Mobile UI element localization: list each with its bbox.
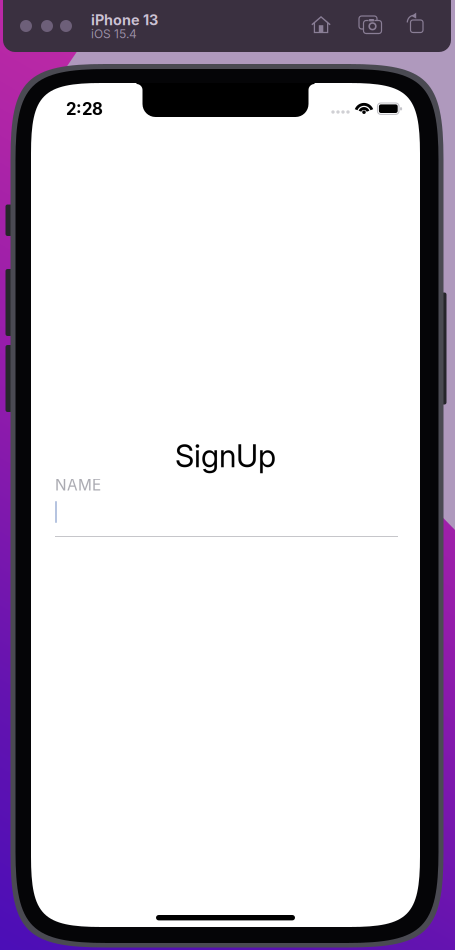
button[interactable]: Screenshot — [359, 16, 382, 34]
staticText: 2:28 — [66, 99, 103, 119]
staticText: iOS 15.4 — [91, 27, 137, 41]
staticText: NAME — [55, 476, 101, 494]
button[interactable]: Share — [405, 12, 425, 34]
button[interactable]: NAME — [55, 477, 398, 549]
button[interactable]: Minimize — [41, 20, 53, 32]
staticText: iPhone 13 — [91, 11, 158, 29]
staticText: SignUp — [175, 437, 276, 474]
button[interactable]: Zoom — [60, 20, 72, 32]
button[interactable]: Close — [20, 20, 32, 32]
button[interactable]: Home — [311, 12, 333, 34]
